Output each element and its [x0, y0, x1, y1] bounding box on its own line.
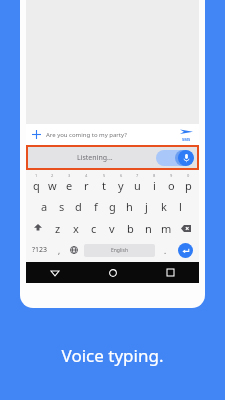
button[interactable]: j: [138, 196, 155, 216]
button[interactable]: 7: [129, 171, 146, 195]
button[interactable]: k: [155, 196, 172, 216]
button[interactable]: a: [36, 196, 53, 216]
staticText: g: [109, 199, 116, 214]
staticText: q: [33, 178, 40, 193]
staticText: 4: [85, 173, 88, 178]
staticText: e: [66, 178, 73, 193]
button[interactable]: Shift: [28, 218, 48, 238]
other: Voice input microphone: [156, 150, 194, 166]
button[interactable]: v: [103, 218, 121, 238]
staticText: o: [168, 178, 175, 193]
button[interactable]: 6: [112, 171, 129, 195]
button[interactable]: Enter: [173, 239, 197, 261]
staticText: Are you coming to my party?: [46, 131, 173, 139]
button[interactable]: z: [48, 218, 67, 238]
staticText: h: [126, 199, 133, 214]
staticText: v: [109, 221, 115, 236]
button[interactable]: l: [172, 196, 189, 216]
staticText: 6: [120, 173, 123, 178]
staticText: 1: [35, 173, 38, 178]
button[interactable]: .: [157, 239, 173, 261]
staticText: s: [59, 199, 65, 214]
button[interactable]: x: [67, 218, 85, 238]
staticText: Voice typing.: [0, 344, 225, 367]
button[interactable]: 5: [95, 171, 112, 195]
staticText: f: [94, 199, 98, 214]
button[interactable]: 0: [180, 171, 197, 195]
staticText: 7: [136, 173, 139, 178]
button[interactable]: 3: [61, 171, 78, 195]
staticText: n: [145, 221, 152, 236]
button[interactable]: ,: [52, 239, 66, 261]
staticText: .: [164, 245, 167, 256]
staticText: j: [145, 199, 148, 214]
button[interactable]: h: [121, 196, 138, 216]
button[interactable]: Backspace: [175, 218, 197, 238]
button[interactable]: Back: [44, 262, 66, 283]
button[interactable]: 1: [28, 171, 44, 195]
button[interactable]: 8: [146, 171, 163, 195]
button[interactable]: n: [139, 218, 157, 238]
button[interactable]: c: [85, 218, 103, 238]
staticText: SMS: [182, 137, 191, 142]
staticText: 5: [103, 173, 106, 178]
staticText: c: [91, 221, 97, 236]
staticText: ?123: [32, 245, 48, 255]
staticText: x: [73, 221, 79, 236]
button[interactable]: English: [84, 244, 155, 257]
staticText: 9: [170, 173, 173, 178]
staticText: d: [75, 199, 82, 214]
staticText: b: [127, 221, 134, 236]
button[interactable]: Add attachment: [26, 124, 46, 145]
button[interactable]: d: [70, 196, 87, 216]
staticText: i: [153, 178, 156, 193]
button[interactable]: Change language: [66, 239, 82, 261]
staticText: z: [55, 221, 61, 236]
button[interactable]: Recents: [159, 262, 181, 283]
staticText: t: [102, 178, 106, 193]
staticText: Listening...: [77, 153, 113, 163]
button[interactable]: 2: [44, 171, 61, 195]
staticText: y: [118, 178, 124, 193]
button[interactable]: Listening...: [28, 147, 197, 168]
button[interactable]: 4: [78, 171, 95, 195]
staticText: ,: [58, 245, 61, 256]
staticText: a: [41, 199, 48, 214]
staticText: English: [111, 247, 129, 254]
staticText: l: [179, 199, 182, 214]
staticText: m: [161, 221, 172, 236]
button[interactable]: g: [104, 196, 121, 216]
button[interactable]: b: [121, 218, 139, 238]
button[interactable]: Send SMS: [173, 124, 199, 145]
staticText: r: [84, 178, 89, 193]
staticText: k: [161, 199, 167, 214]
button[interactable]: ?123: [28, 239, 52, 261]
button[interactable]: 9: [163, 171, 180, 195]
button[interactable]: Home: [102, 262, 124, 283]
button[interactable]: m: [157, 218, 175, 238]
staticText: 3: [68, 173, 71, 178]
staticText: w: [48, 178, 57, 193]
staticText: 2: [51, 173, 54, 178]
staticText: p: [185, 178, 192, 193]
staticText: u: [134, 178, 141, 193]
staticText: 8: [153, 173, 156, 178]
button[interactable]: f: [87, 196, 104, 216]
button[interactable]: s: [53, 196, 70, 216]
staticText: 0: [187, 173, 190, 178]
